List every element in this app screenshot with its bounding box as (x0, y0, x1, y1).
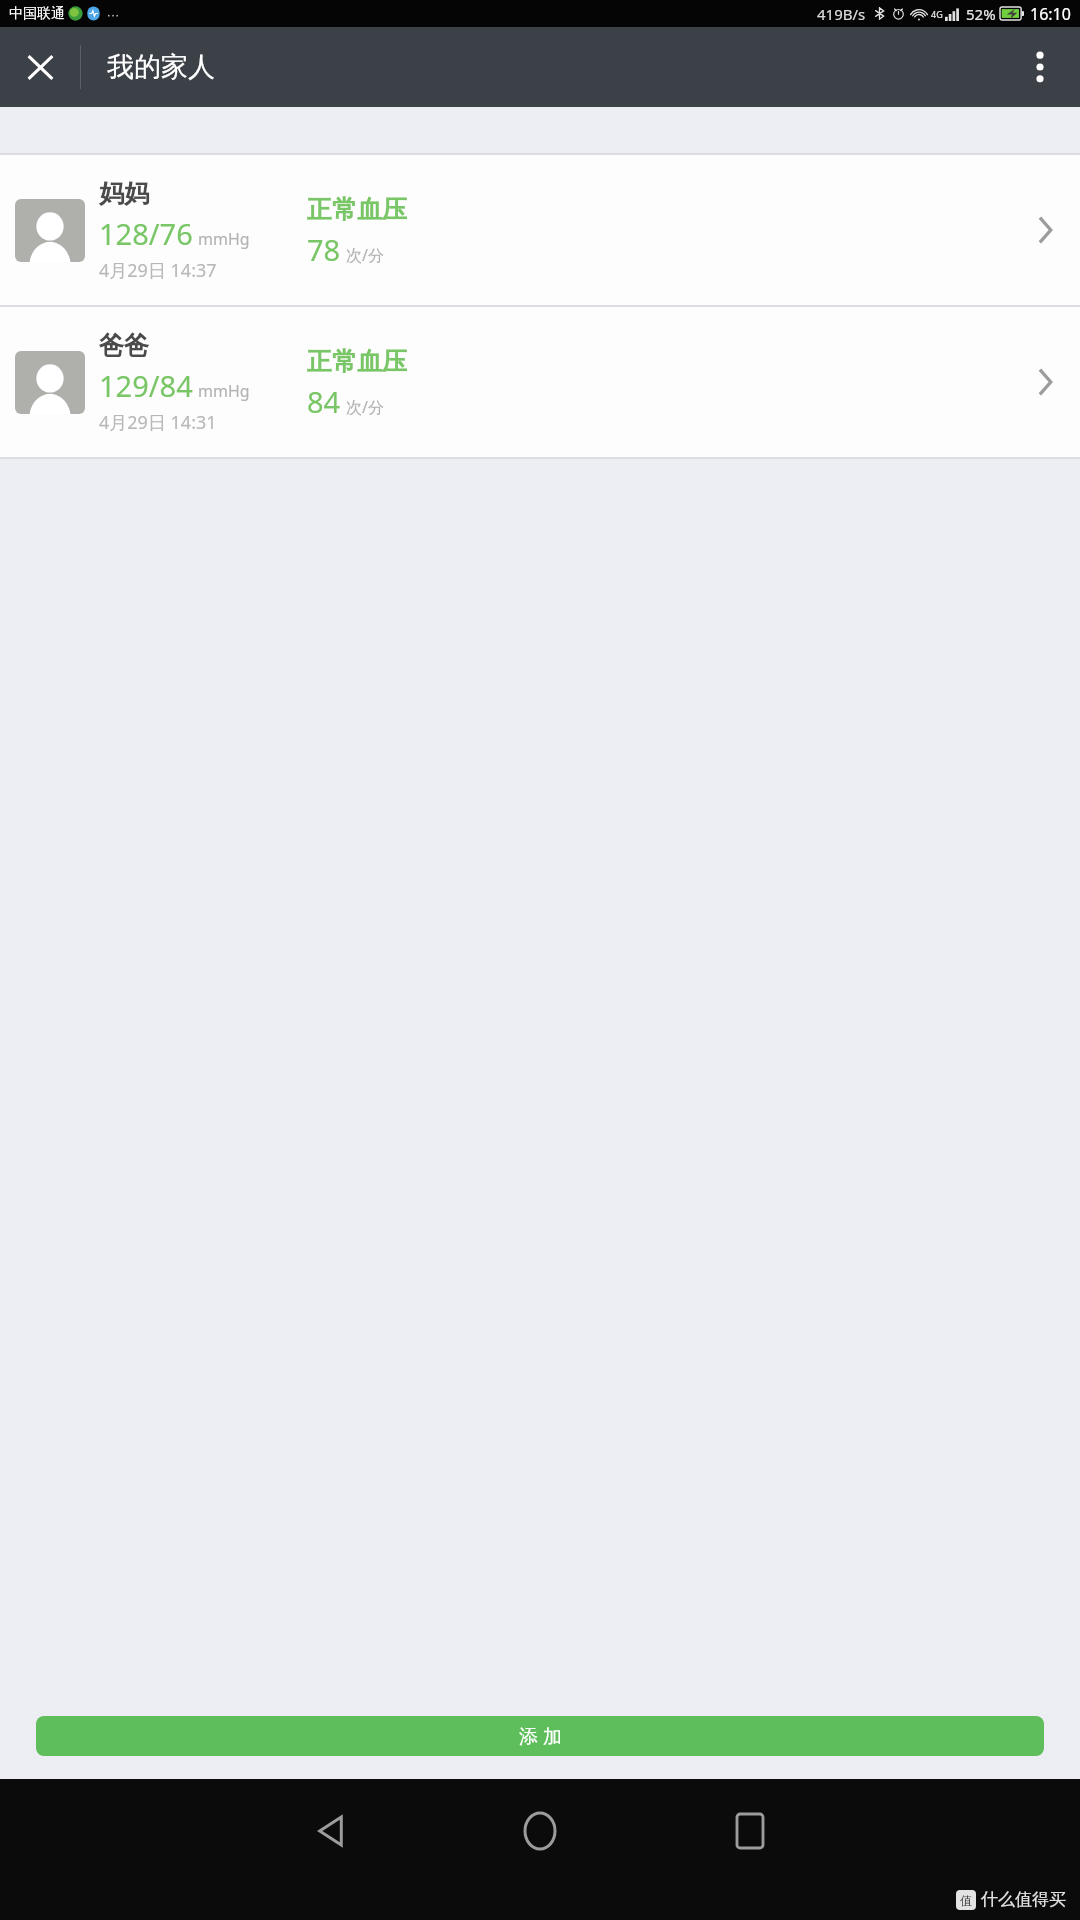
button[interactable]: 妈妈 (0, 155, 1080, 305)
staticText: mmHg (198, 228, 250, 250)
staticText: 我的家人 (107, 50, 215, 84)
staticText: 次/分 (346, 244, 384, 266)
staticText: 正常血压 (307, 194, 407, 225)
button[interactable]: Home (465, 1779, 615, 1883)
staticText: 128/76 (99, 214, 193, 253)
button[interactable]: 添 加 (36, 1716, 1044, 1756)
button[interactable]: More options (1000, 27, 1080, 107)
button[interactable]: Close (0, 27, 80, 107)
staticText: 129/84 (99, 366, 193, 405)
staticText: 什么值得买 (981, 1889, 1066, 1910)
staticText: 中国联通 (9, 5, 65, 23)
staticText: 正常血压 (307, 346, 407, 377)
staticText: 4G (931, 8, 943, 20)
staticText: 爸爸 (99, 330, 149, 361)
staticText: 16:10 (1030, 3, 1071, 25)
staticText: 84 (307, 382, 341, 421)
staticText: mmHg (198, 380, 250, 402)
staticText: 4月29日 14:37 (99, 258, 217, 283)
staticText: 添 加 (519, 1723, 562, 1749)
staticText: 52% (966, 4, 996, 24)
staticText: 次/分 (346, 396, 384, 418)
staticText: 78 (307, 230, 341, 269)
staticText: 4月29日 14:31 (99, 410, 217, 435)
staticText: 值 (960, 1893, 972, 1908)
staticText: 妈妈 (99, 178, 149, 209)
button[interactable]: Recent apps (675, 1779, 825, 1883)
button[interactable]: 爸爸 (0, 307, 1080, 457)
staticText: 419B/s (817, 4, 866, 24)
button[interactable]: Back (255, 1779, 405, 1883)
